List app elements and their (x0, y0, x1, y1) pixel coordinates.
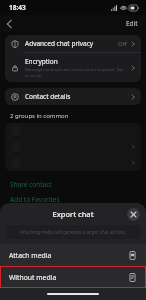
staticText: Attaching media will generate a larger c… (20, 229, 126, 235)
button[interactable]: Close (127, 208, 140, 221)
staticText: 18:43 (9, 3, 26, 12)
button[interactable]: Encryption (5, 53, 141, 82)
button[interactable]: Attach media (0, 244, 146, 266)
button[interactable]: Add to Favorites (0, 192, 146, 207)
button[interactable]: Share contact (0, 177, 146, 192)
button[interactable]: Add to list (0, 207, 146, 222)
staticText: 2 groups in common (10, 112, 69, 120)
staticText: Attach media (9, 251, 128, 260)
staticText: Messages and calls are end-to-end encryp… (25, 67, 127, 78)
staticText: Export chat (52, 209, 94, 219)
staticText: Add to Favorites (10, 195, 60, 204)
staticText: Share contact (10, 180, 52, 189)
staticText: Edit (126, 19, 138, 28)
staticText: Contact details (25, 92, 131, 101)
staticText: Advanced chat privacy (25, 39, 118, 48)
button[interactable]: Contact details (5, 88, 141, 105)
staticText: Without media (9, 273, 128, 282)
button[interactable]: Back (0, 15, 18, 32)
staticText: Off (118, 40, 127, 48)
button[interactable]: Advanced chat privacy (5, 35, 141, 52)
button[interactable]: Edit (118, 16, 146, 31)
button[interactable]: Without media (0, 266, 146, 288)
staticText: Encryption (25, 57, 58, 66)
